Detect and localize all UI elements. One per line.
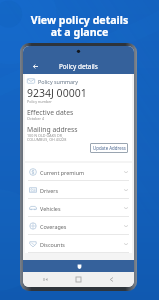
staticText: Discounts [40,241,65,248]
button[interactable]: Update Address [90,143,128,153]
staticText: View policy details at a glance [0,13,159,39]
staticText: 100 N OLD OAKS DR, [27,133,63,138]
button[interactable]: Current premium [25,163,132,181]
button[interactable]: Back [107,275,116,284]
staticText: Current premium [40,169,85,176]
button[interactable]: Home [74,275,83,284]
staticText: Vehicles [40,205,61,212]
button[interactable]: Discounts [25,235,132,253]
staticText: Mailing address [27,125,78,134]
button[interactable]: Recents [41,275,50,284]
button[interactable]: Back [28,58,42,74]
staticText: Drivers [40,187,59,194]
staticText: Policy details [59,62,98,71]
staticText: Policy summary [38,78,79,85]
staticText: October 4 [27,116,45,121]
staticText: COLUMBUS, OH 43228 [27,137,67,142]
staticText: 9234J 00001 [27,86,87,100]
staticText: Coverages [40,223,67,230]
button[interactable]: Vehicles [25,199,132,217]
staticText: Policy number [27,99,52,104]
button[interactable]: Coverages [25,217,132,235]
staticText: Update Address [93,145,126,151]
button[interactable]: Home [74,261,84,271]
button[interactable]: Drivers [25,181,132,199]
staticText: Effective dates [27,108,74,117]
